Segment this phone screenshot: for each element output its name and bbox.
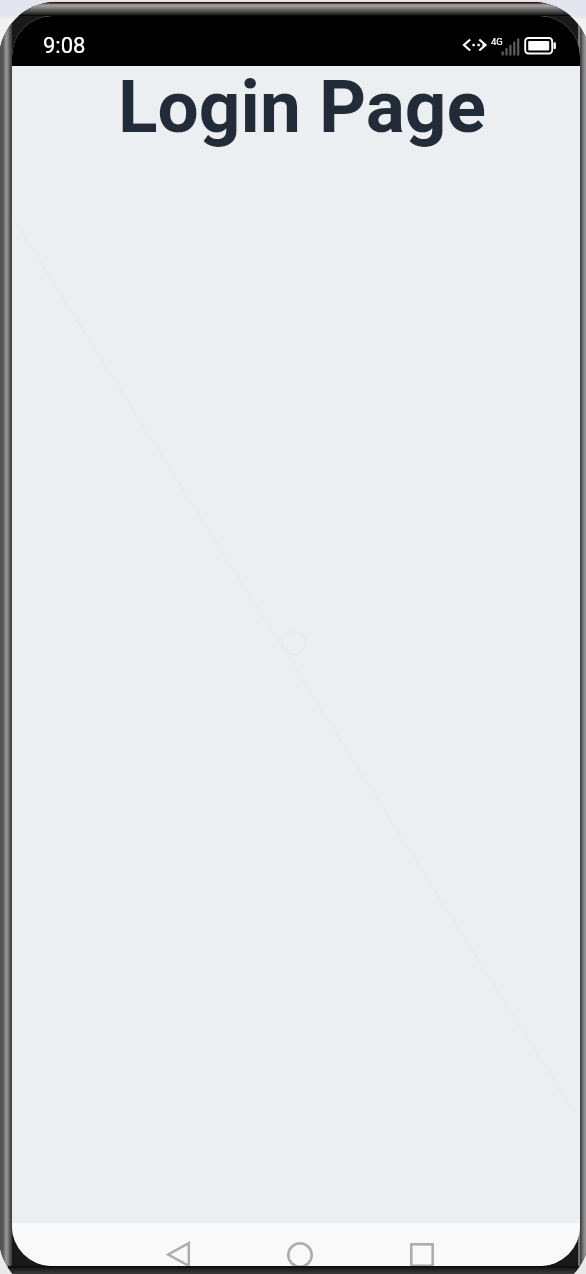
button[interactable]: Back bbox=[117, 1223, 239, 1266]
staticText: 4G bbox=[491, 36, 503, 47]
staticText: Login Page bbox=[18, 64, 580, 150]
button[interactable]: Recent apps bbox=[361, 1223, 483, 1266]
staticText: 9:08 bbox=[43, 33, 86, 59]
button[interactable]: Home bbox=[239, 1223, 361, 1266]
